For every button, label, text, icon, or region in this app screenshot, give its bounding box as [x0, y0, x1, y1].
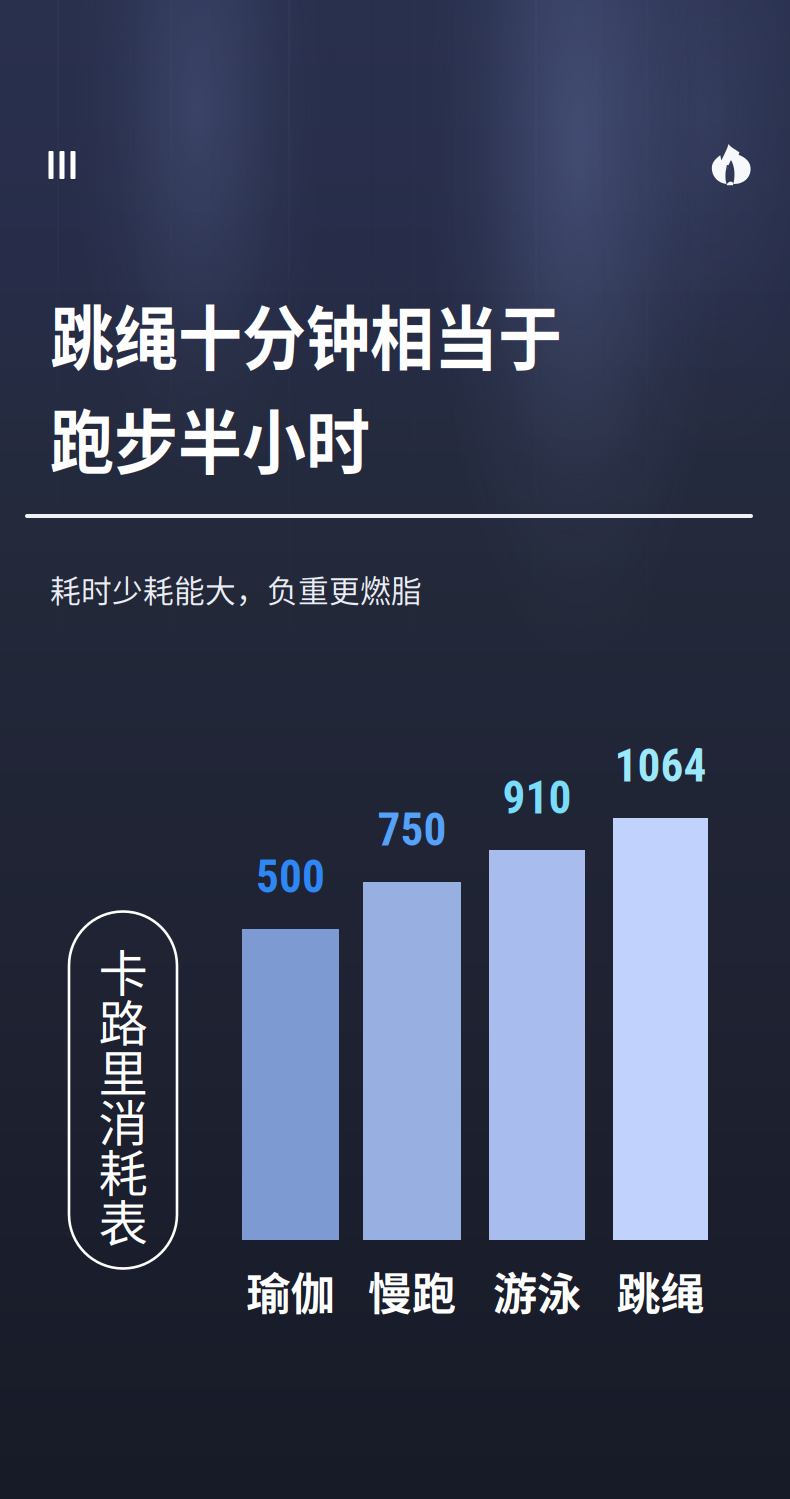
staticText: 瑜伽: [246, 1259, 334, 1323]
staticText: 里: [98, 1034, 147, 1106]
button[interactable]: Calories burned: [697, 130, 765, 198]
staticText: 1064: [614, 739, 706, 792]
staticText: 路: [98, 984, 147, 1056]
button[interactable]: Menu: [34, 137, 89, 193]
staticText: 500: [256, 850, 325, 903]
staticText: 游泳: [493, 1259, 581, 1323]
staticText: 卡: [98, 934, 147, 1006]
staticText: 跳绳十分钟相当于: [50, 288, 562, 380]
staticText: 跑步半小时: [50, 392, 370, 484]
staticText: 750: [377, 803, 446, 856]
staticText: 耗: [98, 1134, 147, 1206]
staticText: 耗时少耗能大，负重更燃脂: [50, 567, 422, 611]
staticText: 910: [502, 771, 571, 824]
staticText: 表: [98, 1184, 147, 1256]
staticText: 消: [98, 1084, 147, 1156]
staticText: 跳绳: [616, 1259, 704, 1323]
staticText: 慢跑: [368, 1259, 456, 1323]
